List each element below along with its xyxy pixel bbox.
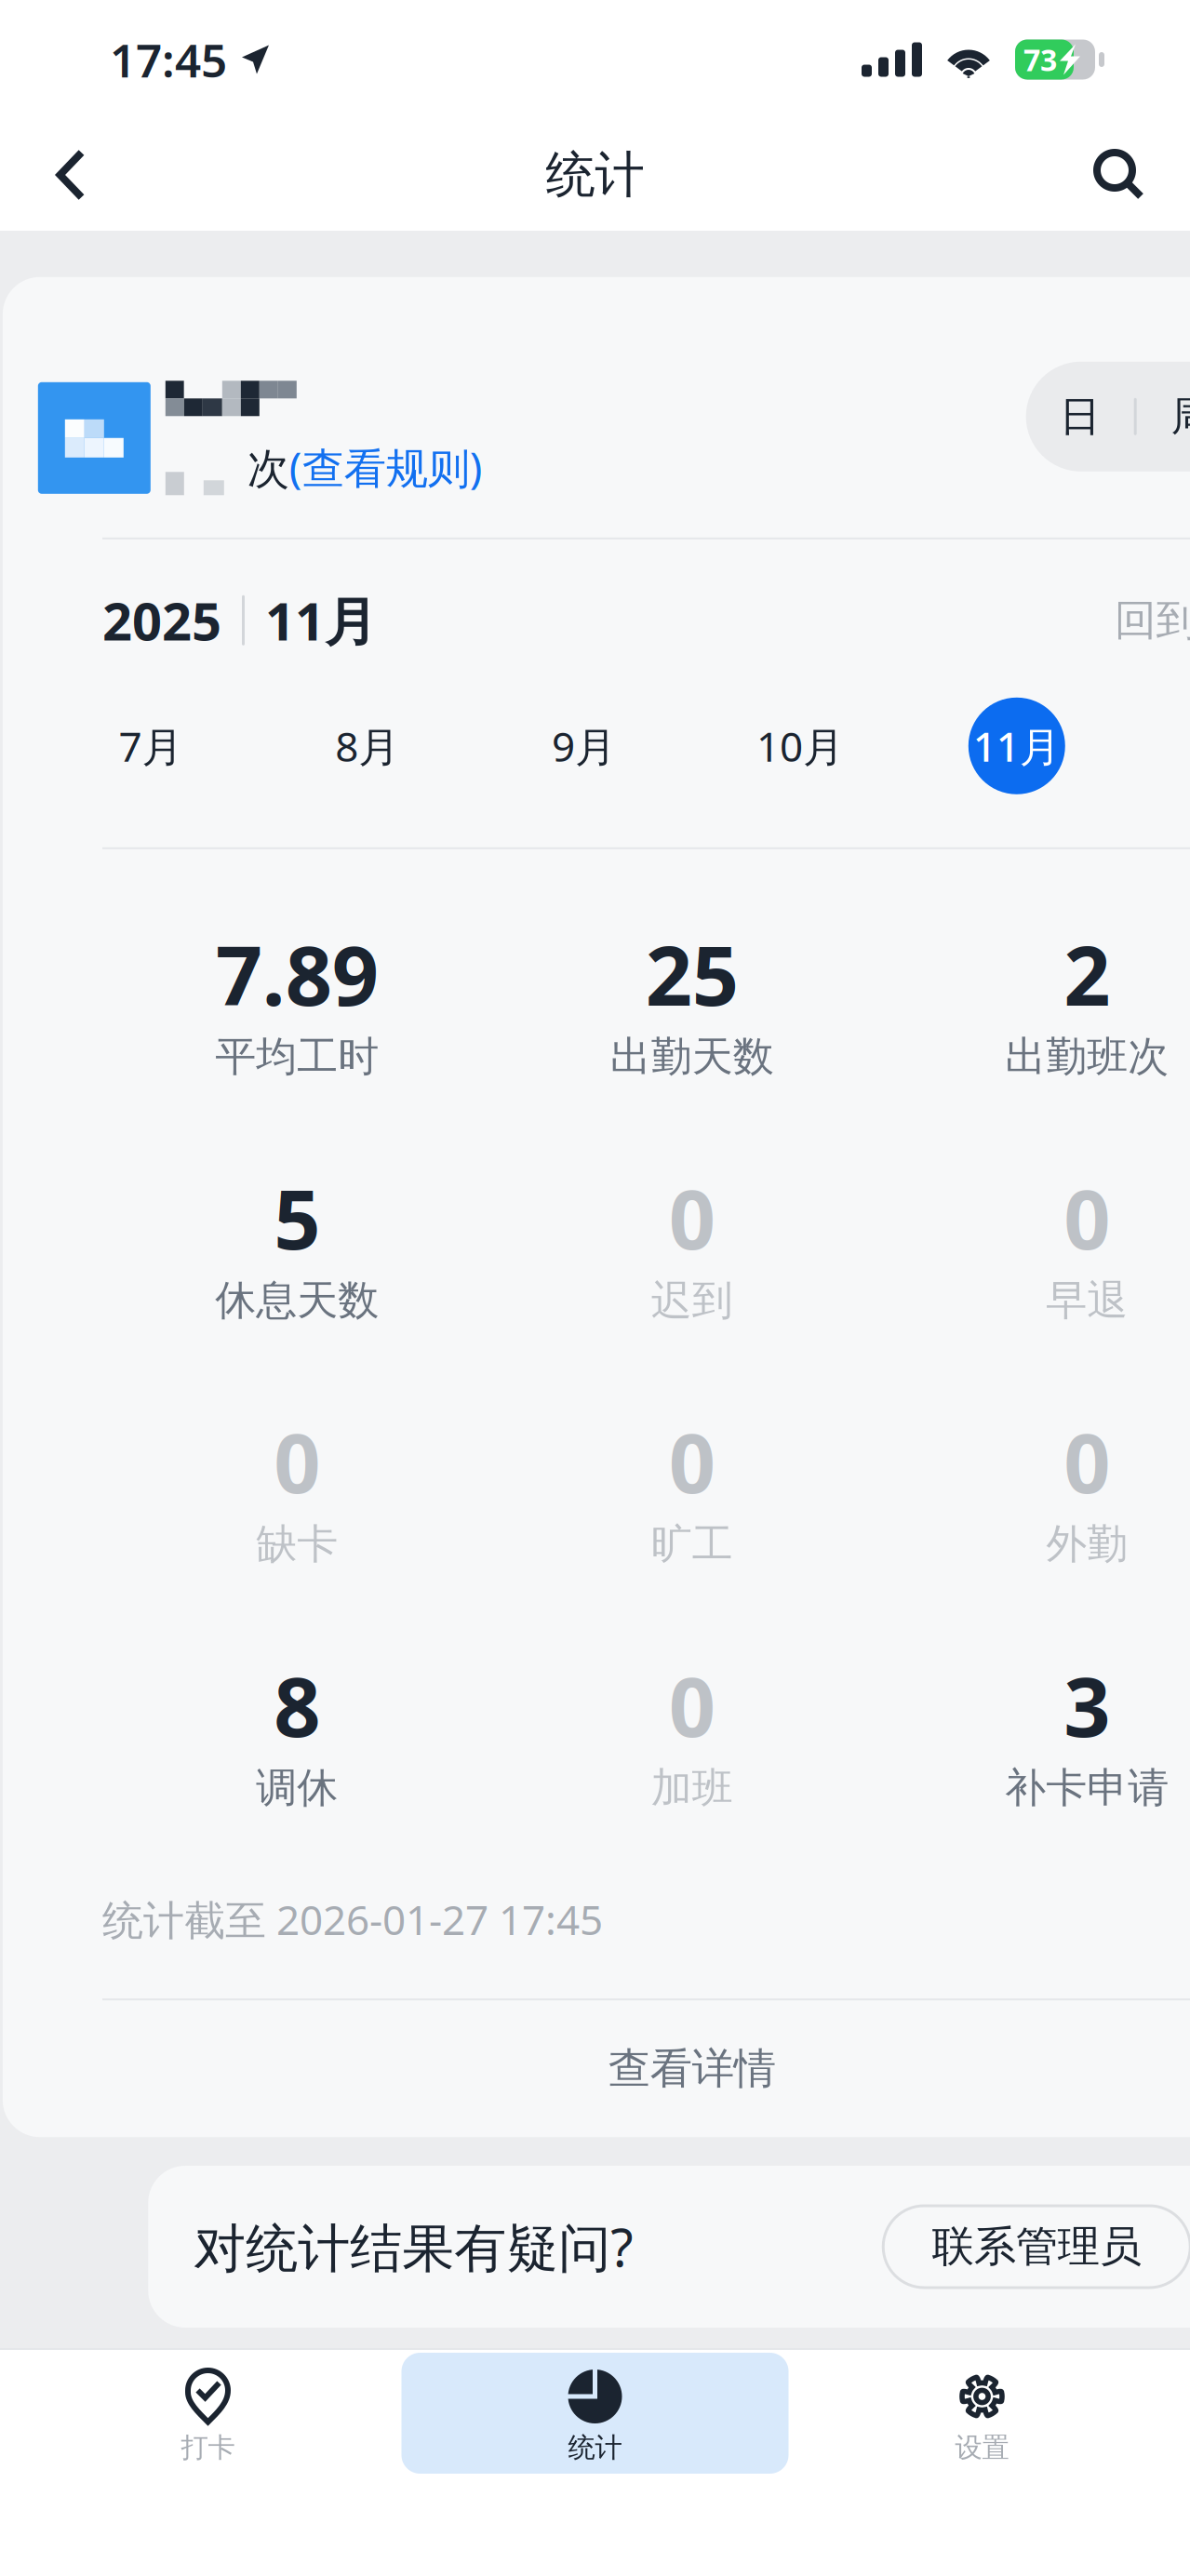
staticText: 周 bbox=[1171, 391, 1190, 442]
staticText: 0 bbox=[274, 1407, 320, 1516]
staticText: 设置 bbox=[955, 2431, 1009, 2464]
button[interactable]: 7月 bbox=[102, 698, 199, 794]
staticText: 17:45 bbox=[110, 29, 227, 90]
staticText: 2025 bbox=[102, 586, 221, 655]
staticText: 73 bbox=[1023, 40, 1057, 79]
staticText: 旷工 bbox=[651, 1519, 733, 1569]
button[interactable]: 10月 bbox=[752, 698, 849, 794]
staticText: 外勤 bbox=[1046, 1519, 1128, 1569]
staticText: 查看详情 bbox=[608, 2043, 776, 2095]
staticText: 出勤班次 bbox=[1005, 1032, 1169, 1082]
staticText: 8月 bbox=[335, 719, 399, 773]
staticText: 补卡申请 bbox=[1005, 1763, 1169, 1813]
staticText: 平均工时 bbox=[215, 1032, 379, 1082]
button[interactable]: 联系管理员 bbox=[883, 2206, 1190, 2288]
staticText: 8 bbox=[274, 1651, 320, 1759]
staticText: 联系管理员 bbox=[932, 2221, 1141, 2273]
staticText: 加班 bbox=[651, 1763, 733, 1813]
staticText: 对统计结果有疑问? bbox=[194, 2212, 633, 2281]
staticText: 0 bbox=[1064, 1163, 1110, 1272]
staticText: 7月 bbox=[119, 719, 183, 773]
button[interactable]: 11月 bbox=[968, 698, 1065, 794]
staticText: 打卡 bbox=[181, 2431, 235, 2464]
staticText: 缺卡 bbox=[256, 1519, 338, 1569]
button[interactable]: 日 bbox=[1026, 362, 1134, 471]
staticText: 日 bbox=[1059, 391, 1100, 442]
staticText: 0 bbox=[669, 1163, 715, 1272]
button[interactable]: 设置 bbox=[789, 2353, 1176, 2474]
staticText: 休息天数 bbox=[215, 1275, 379, 1325]
staticText: 迟到 bbox=[651, 1275, 733, 1325]
staticText: 11月 bbox=[265, 586, 377, 655]
staticText: 统计 bbox=[568, 2431, 622, 2464]
button[interactable]: 8月 bbox=[319, 698, 416, 794]
staticText: 3 bbox=[1064, 1651, 1110, 1759]
staticText: 统计截至 2026-01-27 17:45 bbox=[102, 1892, 603, 1946]
button[interactable]: Search bbox=[1067, 119, 1171, 231]
staticText: 统计 bbox=[546, 144, 644, 205]
staticText: 早退 bbox=[1046, 1275, 1128, 1325]
button[interactable]: 统计 bbox=[401, 2353, 789, 2474]
button[interactable]: 周 bbox=[1137, 362, 1190, 471]
staticText: 9月 bbox=[552, 719, 616, 773]
staticText: 5 bbox=[274, 1163, 320, 1272]
staticText: 0 bbox=[669, 1651, 715, 1759]
button[interactable]: Back bbox=[19, 119, 123, 231]
staticText: 25 bbox=[646, 920, 739, 1028]
button[interactable]: 回到本月 bbox=[1114, 591, 1190, 650]
button[interactable]: 查看详情 bbox=[51, 2000, 1190, 2137]
staticText: 回到本月 bbox=[1114, 594, 1190, 646]
staticText: 0 bbox=[1064, 1407, 1110, 1516]
staticText: 次 bbox=[247, 443, 289, 495]
staticText: 调休 bbox=[256, 1763, 338, 1813]
staticText: (查看规则) bbox=[289, 439, 483, 495]
button[interactable]: 打卡 bbox=[14, 2353, 401, 2474]
staticText: 2 bbox=[1064, 920, 1110, 1028]
staticText: 0 bbox=[669, 1407, 715, 1516]
staticText: 10月 bbox=[757, 719, 844, 773]
staticText: 7.89 bbox=[216, 920, 378, 1028]
staticText: 出勤天数 bbox=[610, 1032, 774, 1082]
staticText: 11月 bbox=[973, 719, 1060, 773]
button[interactable]: 9月 bbox=[535, 698, 632, 794]
